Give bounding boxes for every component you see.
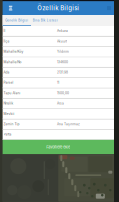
staticText: İl bbox=[4, 29, 6, 33]
button[interactable]: Mahalle/No bbox=[3, 57, 114, 67]
button[interactable]: Pafta bbox=[3, 129, 114, 140]
button[interactable]: İl bbox=[3, 26, 114, 36]
button[interactable]: Parsel bbox=[3, 78, 114, 88]
button[interactable]: Zemin Tip bbox=[3, 119, 114, 129]
button[interactable]: Mevkii bbox=[3, 109, 114, 119]
button[interactable]: Tapu Alanı bbox=[3, 88, 114, 98]
staticText: 11 bbox=[57, 81, 59, 85]
button[interactable]: Nitelik bbox=[3, 98, 114, 109]
staticText: Mahalle/No bbox=[4, 60, 22, 64]
staticText: İlçe bbox=[4, 39, 10, 43]
staticText: Ada bbox=[4, 70, 10, 74]
staticText: Parsel bbox=[4, 81, 14, 85]
staticText: 2131.98 bbox=[57, 70, 68, 74]
staticText: Ana Taşınmaz bbox=[57, 122, 80, 126]
button[interactable]: Ada bbox=[3, 67, 114, 78]
button[interactable]: Favorilere ekle bbox=[3, 140, 114, 154]
staticText: Favorilere ekle bbox=[46, 145, 70, 149]
button[interactable]: Mahalle/Köy bbox=[3, 47, 114, 57]
staticText: Zemin Tip bbox=[4, 122, 20, 126]
button[interactable]: Bina Blk Listesi bbox=[31, 15, 60, 26]
staticText: Tapu Alanı bbox=[4, 91, 21, 95]
staticText: Pafta bbox=[4, 132, 12, 136]
button[interactable]: İlçe bbox=[3, 36, 114, 47]
staticText: Ankara bbox=[57, 29, 68, 33]
button[interactable]: Genelik Bilgisi bbox=[3, 15, 31, 26]
staticText: Genelik Bilgisi bbox=[5, 19, 28, 22]
staticText: Arsa bbox=[57, 101, 64, 105]
staticText: Mahalle/Köy bbox=[4, 50, 24, 54]
staticText: Akyurt bbox=[57, 39, 67, 43]
staticText: Nitelik bbox=[4, 101, 14, 105]
staticText: Yıldırım bbox=[57, 50, 69, 54]
staticText: 1500,00 bbox=[57, 91, 69, 95]
staticText: Bina Blk Listesi bbox=[33, 19, 58, 22]
staticText: 134600 bbox=[57, 60, 68, 64]
staticText: Mevkii bbox=[4, 112, 15, 116]
button[interactable]: Menü bbox=[7, 3, 15, 13]
staticText: Özellik Bilgisi bbox=[37, 4, 79, 12]
